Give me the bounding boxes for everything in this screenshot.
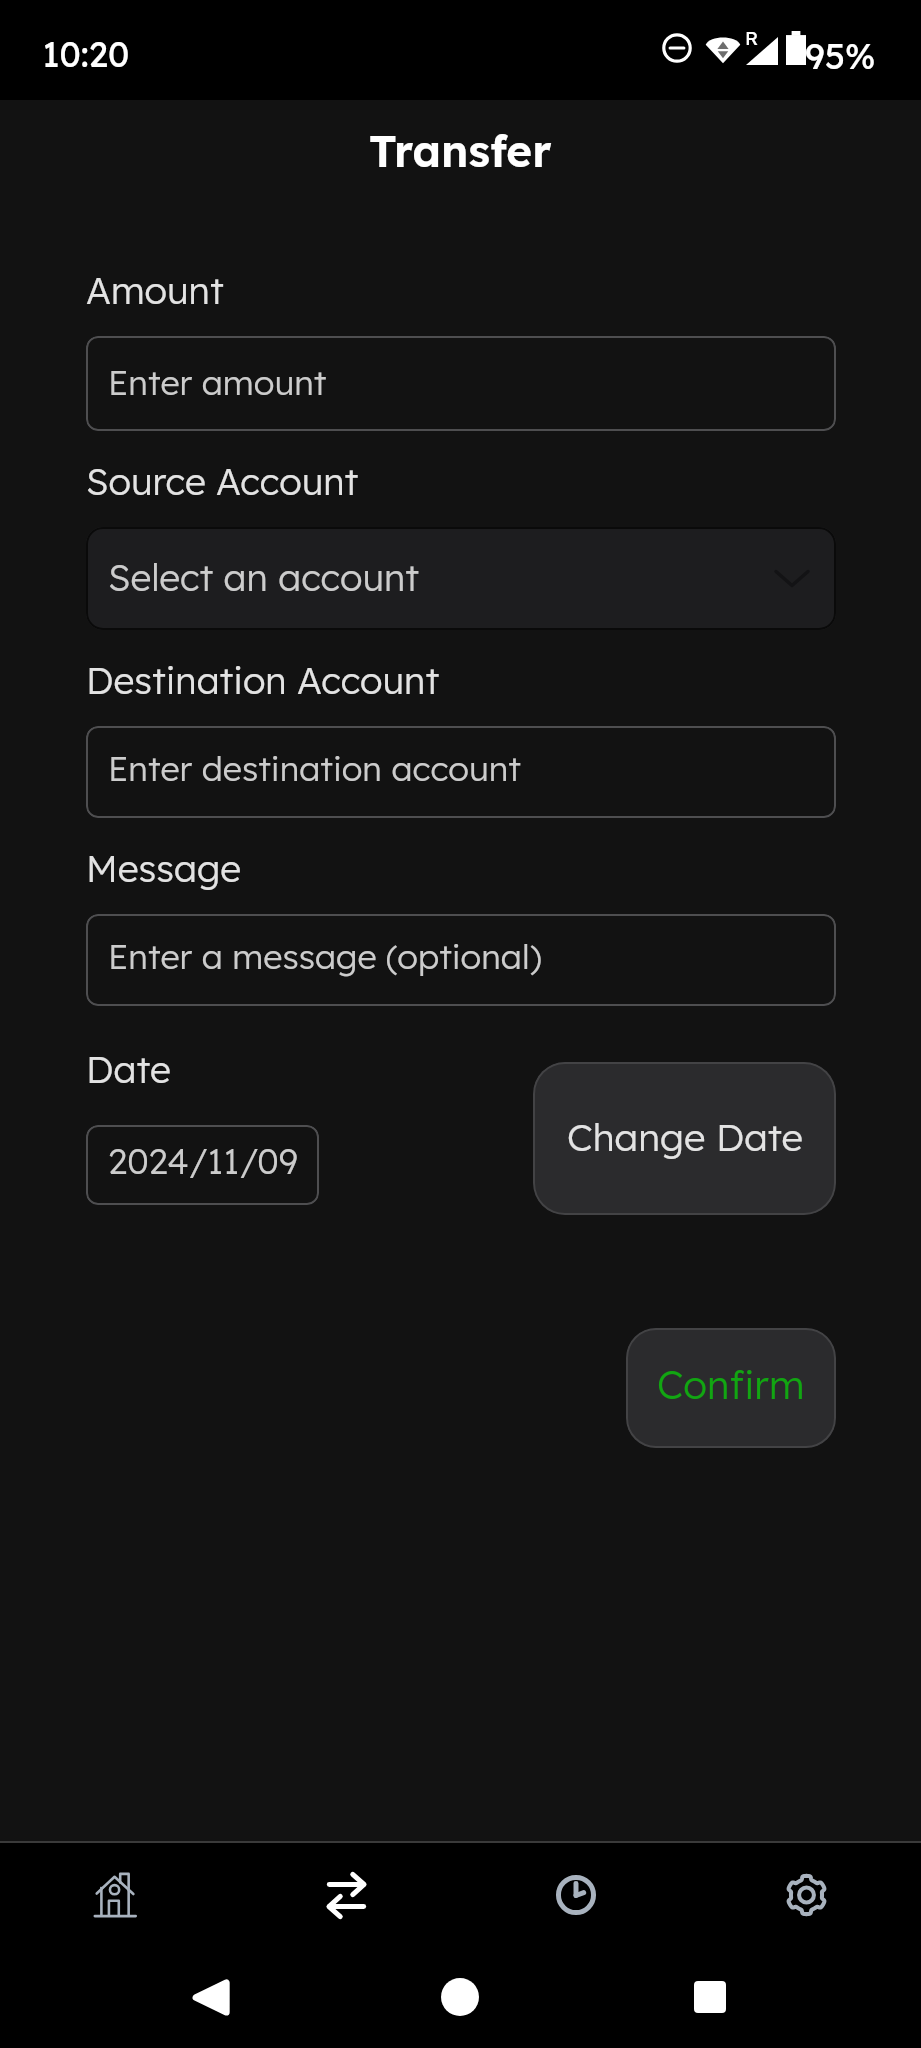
staticText: Select an account [108, 554, 420, 600]
button[interactable]: History [461, 1843, 691, 1951]
staticText: Source Account [86, 458, 359, 504]
staticText: R [745, 26, 759, 50]
button[interactable]: Settings [691, 1843, 921, 1951]
staticText: 2024/11/09 [108, 1139, 298, 1183]
staticText: 10:20 [42, 32, 130, 76]
staticText: Amount [86, 267, 224, 313]
button[interactable]: Home [424, 1961, 496, 2033]
button[interactable]: Recents [674, 1961, 746, 2033]
button[interactable]: Home [0, 1843, 231, 1951]
button[interactable]: Confirm [626, 1328, 836, 1448]
staticText: Date [86, 1046, 171, 1092]
button[interactable]: Change Date [533, 1062, 836, 1215]
button[interactable]: 2024/11/09 [86, 1125, 319, 1205]
button[interactable]: Back [174, 1961, 246, 2033]
staticText: Destination Account [86, 657, 440, 703]
staticText: Confirm [657, 1360, 805, 1409]
staticText: Enter a message (optional) [108, 935, 542, 978]
staticText: Change Date [567, 1113, 803, 1161]
staticText: Transfer [369, 123, 552, 178]
button[interactable]: Enter destination account [86, 726, 836, 818]
staticText: Message [86, 845, 241, 891]
button[interactable]: Select an account [86, 527, 836, 630]
button[interactable]: Enter amount [86, 336, 836, 431]
staticText: Enter amount [108, 361, 327, 404]
staticText: 95% [805, 33, 876, 78]
staticText: Enter destination account [108, 747, 521, 790]
button[interactable]: Transfer [231, 1843, 461, 1951]
button[interactable]: Enter a message (optional) [86, 914, 836, 1006]
